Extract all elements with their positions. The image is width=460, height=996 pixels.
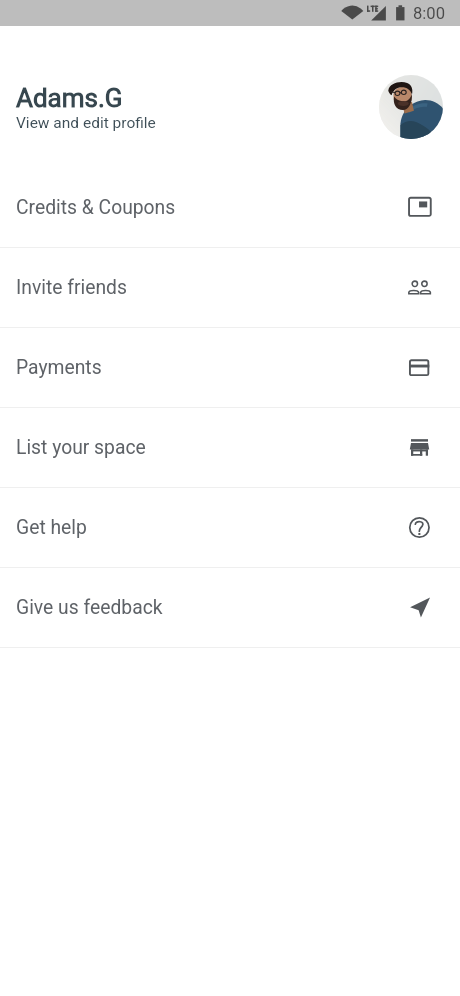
button[interactable]: Payments xyxy=(0,328,460,407)
staticText: Get help xyxy=(16,516,87,539)
staticText: View and edit profile xyxy=(16,114,156,132)
other: Get help xyxy=(405,513,435,543)
staticText: Adams.G xyxy=(16,83,123,113)
button[interactable]: Invite friends xyxy=(0,248,460,327)
other: Credits and coupons xyxy=(405,192,435,222)
button[interactable]: Credits & Coupons xyxy=(0,167,460,247)
other: Payments xyxy=(405,353,435,383)
button[interactable]: Get help xyxy=(0,488,460,567)
other: List your space xyxy=(405,433,435,463)
staticText: List your space xyxy=(16,436,146,459)
button[interactable]: Profile photo xyxy=(379,75,443,139)
button[interactable]: Adams.G xyxy=(0,26,460,167)
button[interactable]: Give us feedback xyxy=(0,568,460,647)
button[interactable]: List your space xyxy=(0,408,460,487)
staticText: 8:00 xyxy=(413,4,445,23)
staticText: Credits & Coupons xyxy=(16,196,176,219)
staticText: Give us feedback xyxy=(16,596,163,619)
other: Invite friends xyxy=(405,273,435,303)
other: Give us feedback xyxy=(405,593,435,623)
staticText: Payments xyxy=(16,356,102,379)
staticText: Invite friends xyxy=(16,276,127,299)
